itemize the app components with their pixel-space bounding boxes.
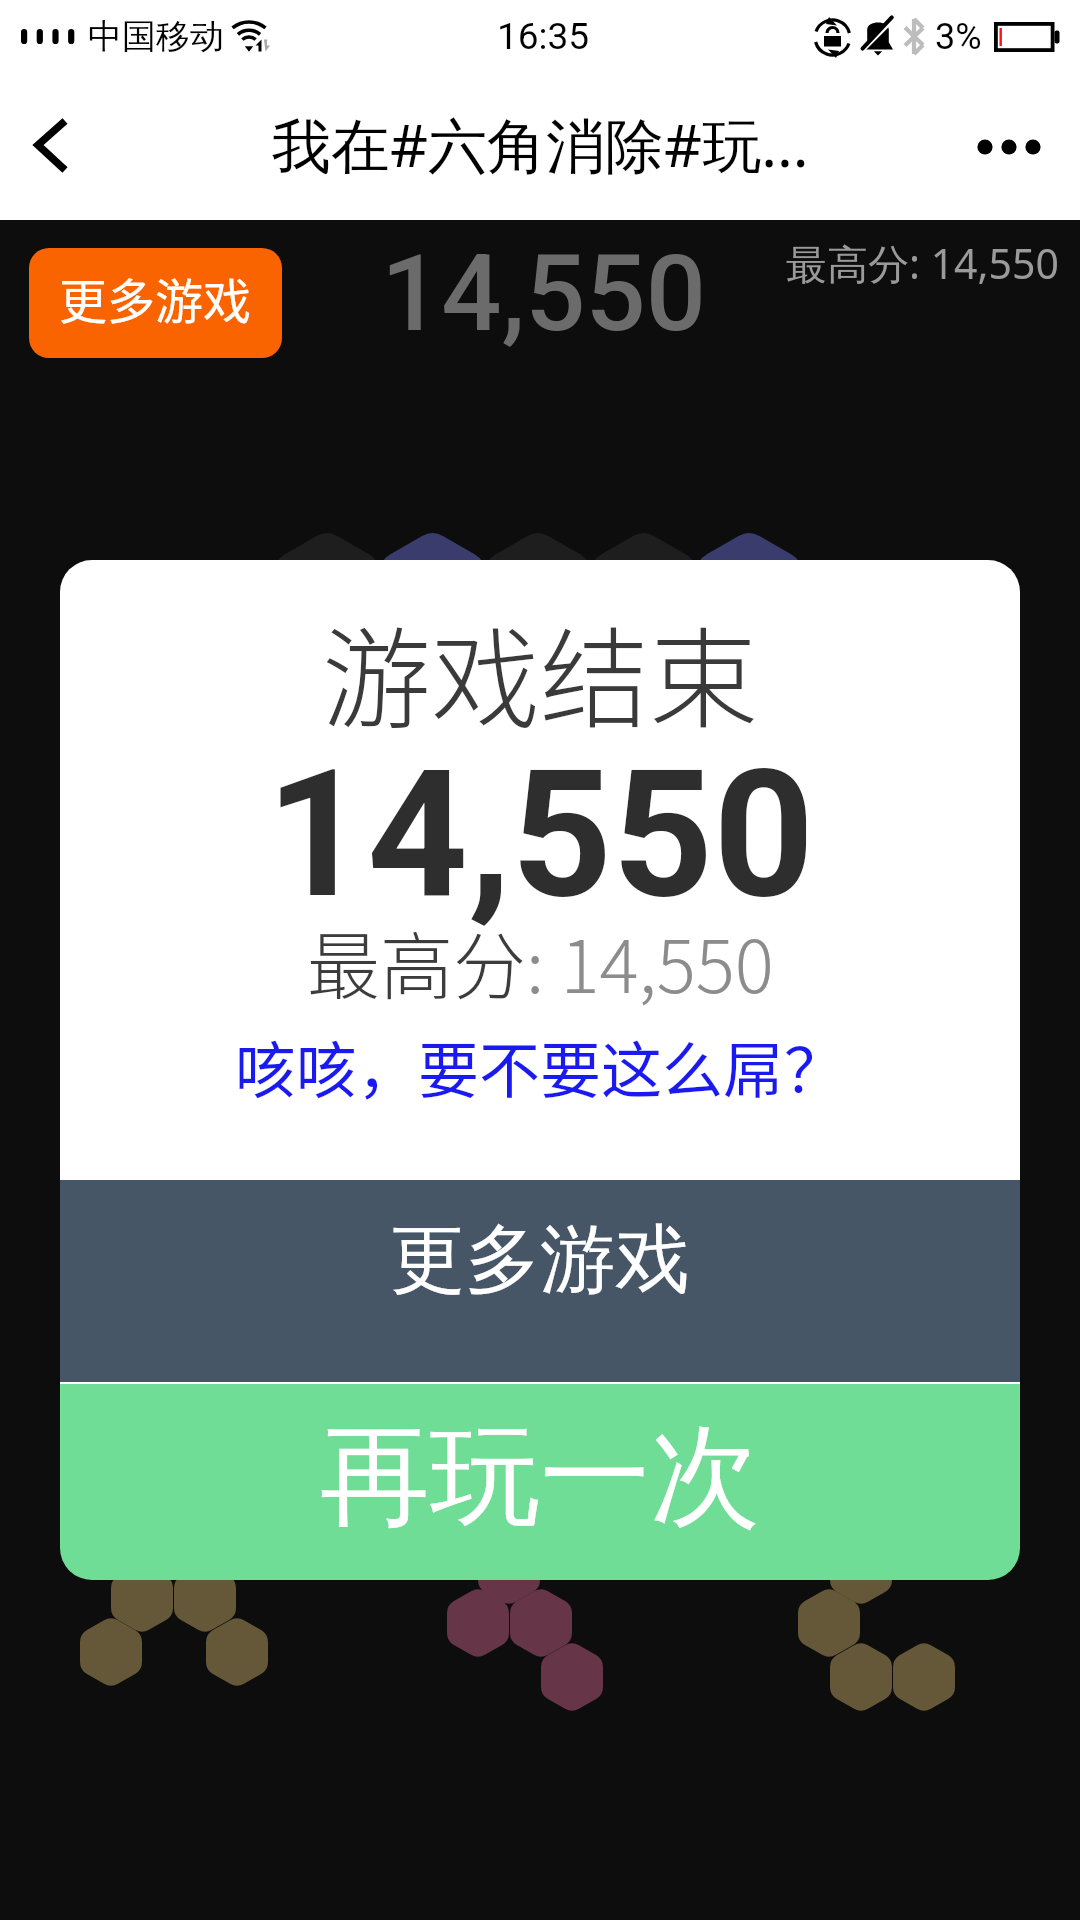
staticText: 中国移动 bbox=[88, 15, 224, 58]
button[interactable]: 更多游戏 bbox=[29, 248, 282, 358]
button[interactable]: 再玩一次 bbox=[60, 1384, 1020, 1580]
staticText: 14,550 bbox=[381, 232, 706, 356]
staticText: 16:35 bbox=[497, 15, 590, 58]
staticText: 最高分 bbox=[307, 908, 526, 1014]
button[interactable]: More options bbox=[960, 102, 1065, 192]
staticText: 更多游戏 bbox=[59, 263, 252, 333]
button[interactable]: 更多游戏 bbox=[60, 1180, 1020, 1382]
button[interactable]: Back bbox=[0, 90, 110, 200]
staticText: 再玩一次 bbox=[320, 1408, 760, 1547]
staticText: 更多游戏 bbox=[390, 1213, 690, 1307]
staticText: 我在#六角消除#玩... bbox=[272, 104, 809, 185]
staticText: 最高分: 14,550 bbox=[786, 235, 1059, 291]
staticText: 咳咳，要不要这么屌？ bbox=[235, 1022, 846, 1110]
staticText: 游戏结束 bbox=[322, 593, 758, 751]
staticText: : 14,550 bbox=[526, 908, 774, 1014]
staticText: 14,550 bbox=[266, 732, 815, 938]
staticText: 3% bbox=[935, 16, 982, 58]
